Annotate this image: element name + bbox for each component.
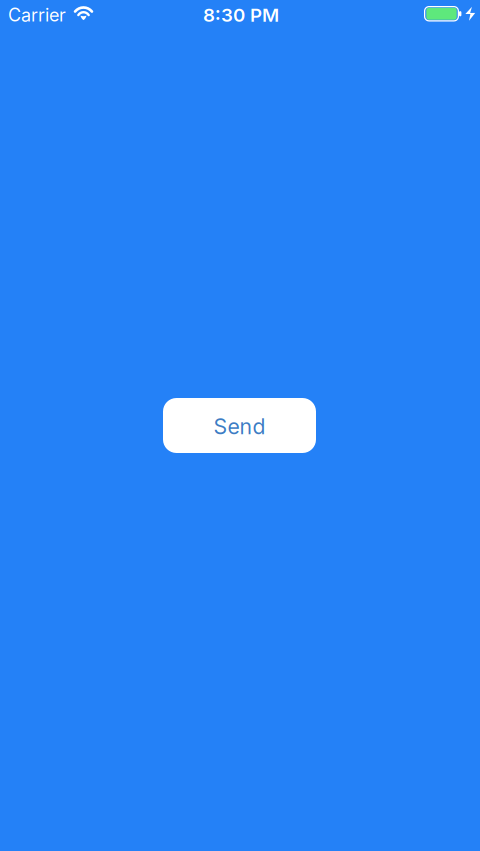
staticText: 8:30 PM <box>203 4 279 26</box>
staticText: Send <box>213 414 265 439</box>
button[interactable]: Send <box>163 398 316 453</box>
staticText: Carrier <box>8 4 66 26</box>
